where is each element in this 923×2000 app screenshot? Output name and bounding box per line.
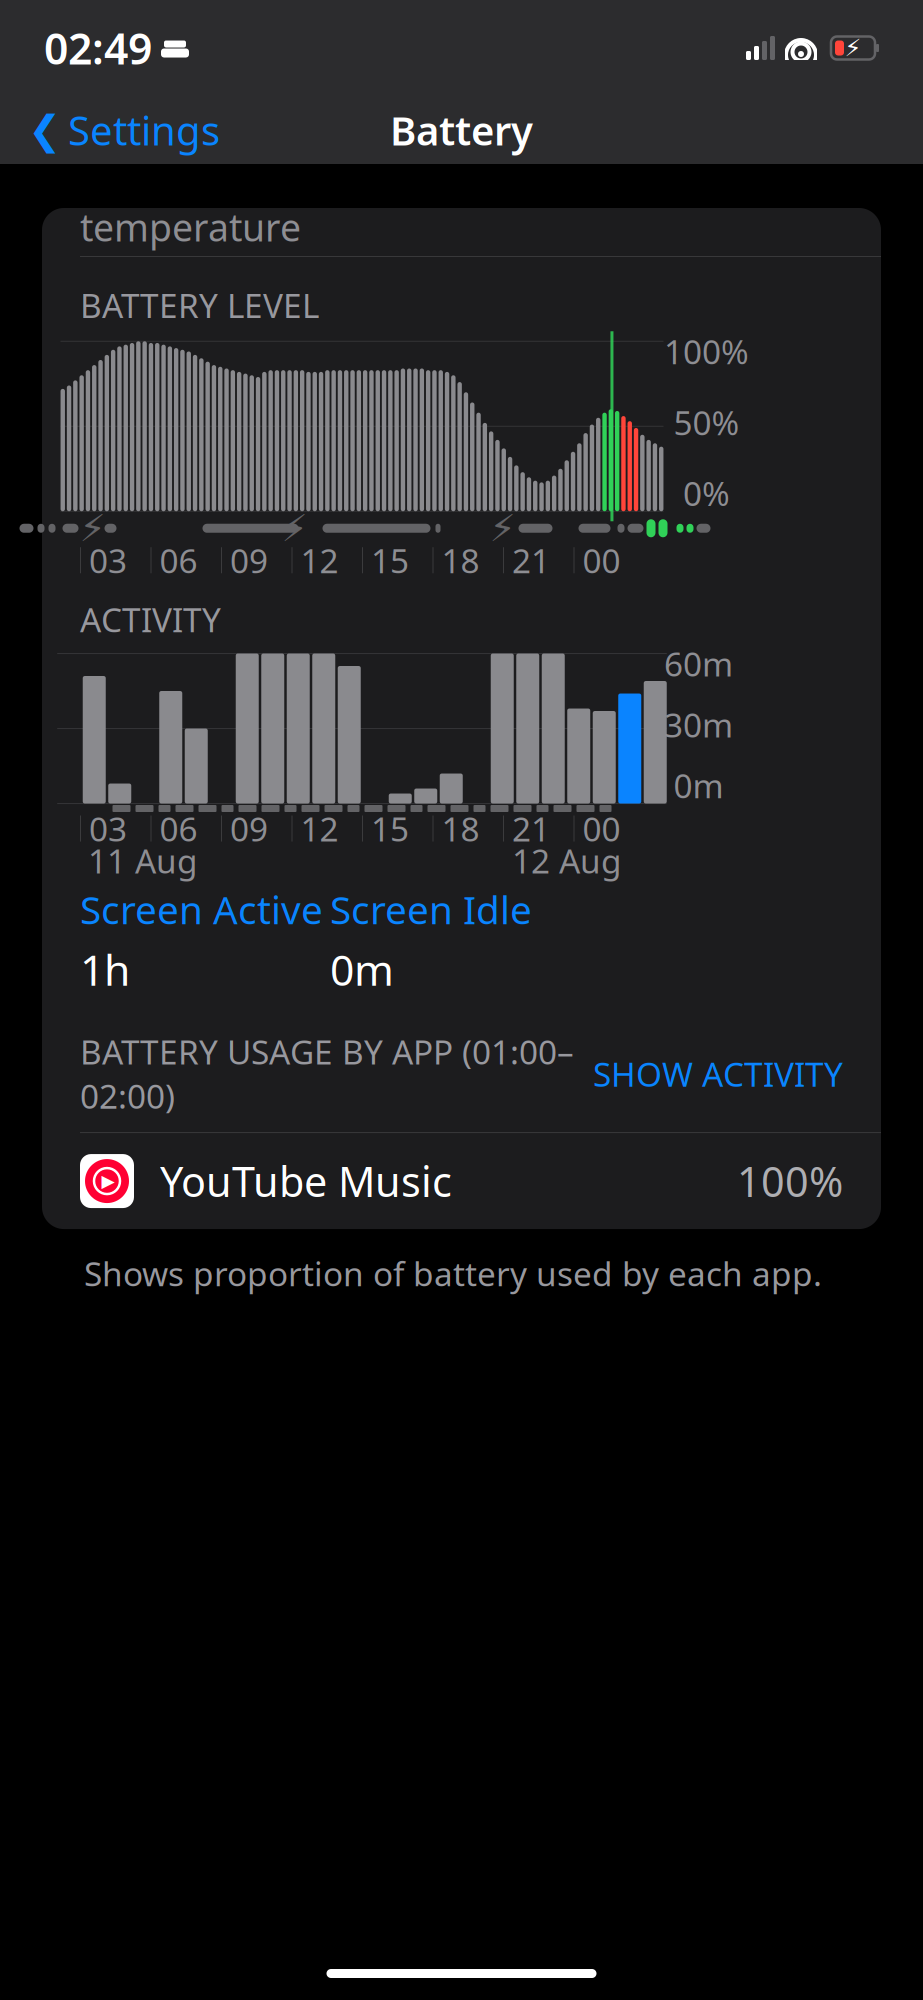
staticText: 03: [89, 538, 127, 582]
staticText: 00: [582, 538, 620, 582]
staticText: 06: [159, 538, 197, 582]
staticText: 0m: [330, 941, 394, 998]
button[interactable]: ▶: [42, 1133, 881, 1229]
staticText: 15: [371, 806, 409, 851]
staticText: YouTube Music: [160, 1154, 452, 1208]
staticText: ACTIVITY: [80, 597, 221, 642]
staticText: 50%: [673, 400, 739, 444]
staticText: 11 Aug: [88, 838, 198, 883]
staticText: SHOW ACTIVITY: [593, 1052, 843, 1096]
staticText: 21: [512, 538, 550, 582]
staticText: BATTERY USAGE BY APP (01:00–02:00): [80, 1029, 574, 1118]
staticText: 18: [441, 538, 479, 582]
staticText: 60m: [664, 641, 733, 686]
staticText: 00: [582, 806, 620, 851]
staticText: 18: [441, 806, 479, 851]
staticText: 12 Aug: [512, 838, 622, 883]
staticText: ⚡︎: [844, 34, 861, 62]
staticText: Shows proportion of battery used by each…: [84, 1251, 822, 1295]
staticText: 09: [230, 538, 268, 582]
staticText: Screen Idle: [330, 883, 532, 935]
button[interactable]: Screen Idle: [330, 883, 580, 997]
staticText: 0m: [673, 763, 723, 808]
staticText: ▶: [101, 1171, 114, 1191]
staticText: 21: [512, 806, 550, 851]
staticText: 12: [300, 806, 338, 851]
staticText: ⚡︎: [79, 507, 105, 549]
button[interactable]: ❮: [22, 95, 226, 164]
staticText: 09: [230, 806, 268, 851]
staticText: 100%: [737, 1154, 843, 1208]
staticText: 1h: [80, 941, 130, 998]
staticText: 12: [300, 538, 338, 582]
staticText: Battery: [390, 103, 533, 156]
staticText: BATTERY LEVEL: [80, 283, 319, 327]
button[interactable]: Screen Active: [80, 883, 330, 997]
staticText: ⚡︎: [489, 507, 515, 549]
staticText: Settings: [68, 103, 220, 156]
staticText: 30m: [664, 702, 733, 747]
button[interactable]: SHOW ACTIVITY: [593, 1052, 843, 1096]
staticText: 03: [89, 806, 127, 851]
staticText: ❮: [28, 107, 62, 153]
staticText: ⚡︎: [281, 507, 307, 549]
staticText: 15: [371, 538, 409, 582]
staticText: 06: [159, 806, 197, 851]
staticText: 100%: [664, 329, 749, 374]
staticText: temperature: [80, 202, 301, 252]
staticText: 0%: [683, 471, 730, 515]
staticText: 02:49: [44, 20, 152, 76]
staticText: Screen Active: [80, 883, 323, 935]
